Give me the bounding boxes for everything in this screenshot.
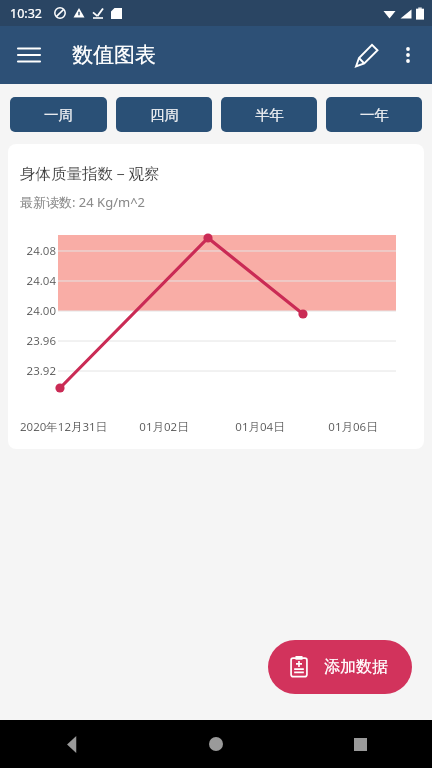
button[interactable]: Home <box>144 720 288 768</box>
button[interactable]: Recent apps <box>288 720 432 768</box>
staticText: 01月02日 <box>116 419 212 435</box>
staticText: 24.08 <box>20 243 56 259</box>
button[interactable]: Open navigation menu <box>8 34 50 76</box>
button[interactable]: 一年 <box>326 97 422 132</box>
staticText: 24.04 <box>20 273 56 289</box>
staticText: 最新读数: 24 Kg/m^2 <box>20 193 146 211</box>
button[interactable]: 半年 <box>221 97 317 132</box>
staticText: 10:32 <box>10 5 42 22</box>
button[interactable]: 一周 <box>10 97 107 132</box>
button[interactable]: More options <box>388 35 428 75</box>
button[interactable]: 添加数据 <box>268 640 412 694</box>
staticText: 一周 <box>44 106 73 124</box>
button[interactable]: Edit <box>344 33 388 77</box>
staticText: 半年 <box>255 106 284 124</box>
staticText: 一年 <box>360 106 389 124</box>
staticText: 24.00 <box>20 303 56 319</box>
staticText: 01月06日 <box>308 419 398 435</box>
staticText: 数值图表 <box>72 42 156 68</box>
button[interactable]: 四周 <box>116 97 212 132</box>
staticText: 2020年12月31日 <box>20 419 116 435</box>
staticText: 身体质量指数－观察 <box>20 164 160 184</box>
staticText: 添加数据 <box>324 657 388 677</box>
staticText: 四周 <box>150 106 179 124</box>
staticText: 01月04日 <box>212 419 308 435</box>
button[interactable]: Back <box>0 720 144 768</box>
staticText: 23.92 <box>20 363 56 379</box>
staticText: 23.96 <box>20 333 56 349</box>
